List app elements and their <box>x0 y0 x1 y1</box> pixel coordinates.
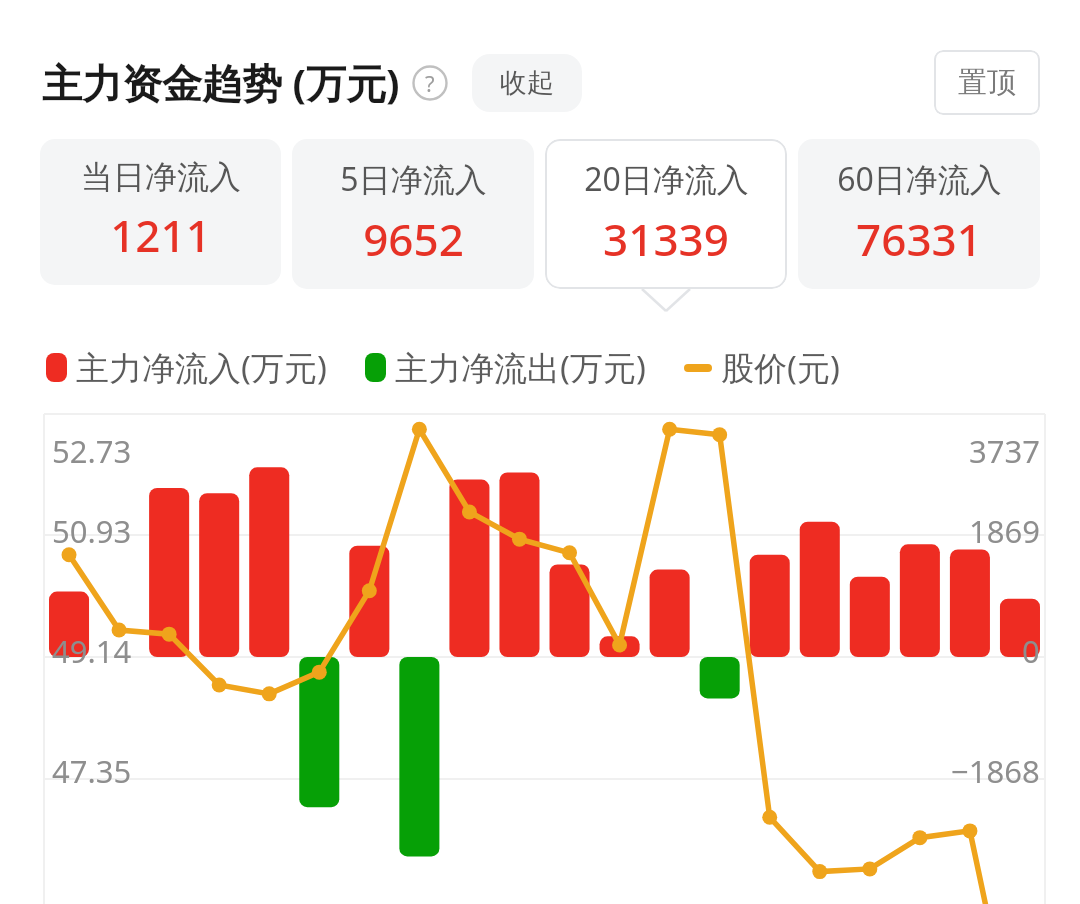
staticText: 20日净流入 <box>584 157 749 201</box>
button[interactable]: 60日净流入 <box>798 139 1040 289</box>
staticText: 47.35 <box>52 750 132 792</box>
button[interactable]: 当日净流入 <box>40 139 281 285</box>
staticText: 31339 <box>603 209 729 269</box>
button[interactable]: 置顶 <box>934 50 1040 115</box>
staticText: 60日净流入 <box>837 157 1002 201</box>
staticText: 49.14 <box>52 630 132 672</box>
staticText: 收起 <box>500 66 554 100</box>
staticText: 1211 <box>110 205 211 265</box>
staticText: 主力资金趋势 (万元) <box>42 55 400 110</box>
staticText: 主力净流入(万元) <box>76 345 327 390</box>
staticText: 股价(元) <box>721 345 840 390</box>
staticText: 76331 <box>856 209 982 269</box>
button[interactable]: 收起 <box>472 54 582 112</box>
staticText: 52.73 <box>52 430 132 472</box>
staticText: 9652 <box>363 209 464 269</box>
staticText: 0 <box>1022 630 1040 672</box>
button[interactable]: 5日净流入 <box>292 139 534 289</box>
staticText: 5日净流入 <box>340 157 487 201</box>
staticText: 主力净流出(万元) <box>395 345 646 390</box>
staticText: 3737 <box>969 430 1040 472</box>
staticText: −1868 <box>951 750 1040 792</box>
button[interactable]: 20日净流入 <box>545 139 787 289</box>
staticText: 1869 <box>969 510 1040 552</box>
staticText: 50.93 <box>52 510 132 552</box>
staticText: 当日净流入 <box>81 157 241 197</box>
button[interactable]: 帮助说明 <box>412 65 448 101</box>
staticText: ? <box>425 68 435 98</box>
staticText: 置顶 <box>958 64 1016 101</box>
